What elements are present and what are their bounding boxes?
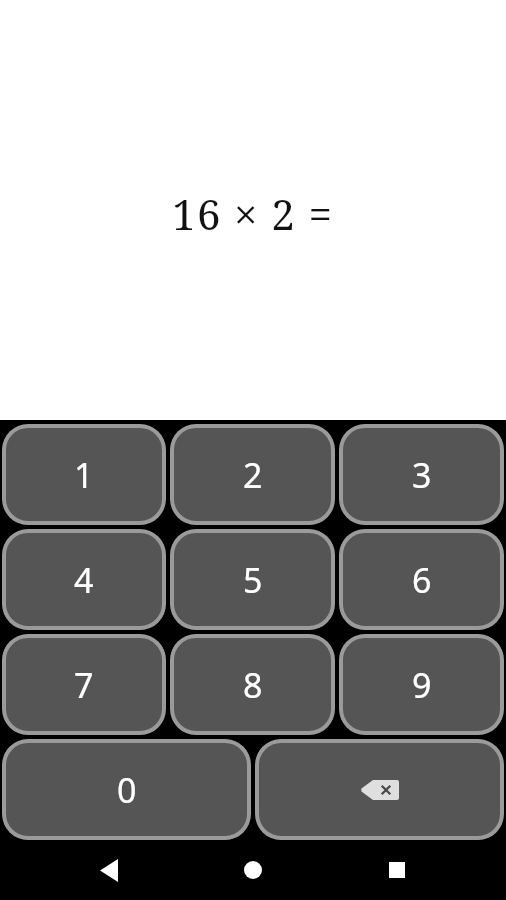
button[interactable]: 8 bbox=[170, 634, 335, 735]
button[interactable]: 5 bbox=[170, 529, 335, 630]
button[interactable] bbox=[369, 842, 425, 898]
staticText: 1 bbox=[74, 452, 94, 498]
staticText: 6 bbox=[412, 557, 432, 603]
staticText: 0 bbox=[117, 767, 137, 813]
staticText: 4 bbox=[74, 557, 94, 603]
staticText: 2 bbox=[243, 452, 263, 498]
button[interactable] bbox=[225, 842, 281, 898]
staticText: 3 bbox=[412, 452, 432, 498]
staticText: 8 bbox=[243, 662, 263, 708]
button[interactable]: 6 bbox=[339, 529, 504, 630]
staticText: 7 bbox=[74, 662, 94, 708]
button[interactable]: 9 bbox=[339, 634, 504, 735]
button[interactable]: 3 bbox=[339, 424, 504, 525]
button[interactable] bbox=[81, 842, 137, 898]
button[interactable]: 7 bbox=[2, 634, 166, 735]
staticText: 16 × 2 = bbox=[172, 185, 334, 242]
button[interactable]: 4 bbox=[2, 529, 166, 630]
button[interactable]: 1 bbox=[2, 424, 166, 525]
button[interactable] bbox=[255, 739, 504, 840]
button[interactable]: 0 bbox=[2, 739, 251, 840]
button[interactable]: 2 bbox=[170, 424, 335, 525]
staticText: 5 bbox=[243, 557, 263, 603]
staticText: 9 bbox=[412, 662, 432, 708]
